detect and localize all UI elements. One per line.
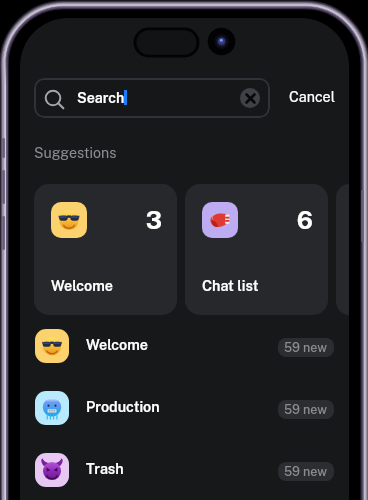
button[interactable]: Clear search (240, 88, 260, 108)
staticText: Cancel (289, 88, 336, 105)
staticText: Production (86, 398, 160, 415)
staticText: Trash (86, 460, 124, 477)
staticText: Chat list (202, 277, 259, 294)
button[interactable]: 6 (185, 184, 328, 315)
staticText: 59 new (284, 464, 328, 479)
staticText: Welcome (51, 277, 114, 294)
staticText: Suggestions (34, 145, 117, 162)
button[interactable]: 2 (336, 184, 349, 315)
staticText: 6 (296, 206, 313, 235)
staticText: Search (77, 90, 125, 107)
staticText: 59 new (284, 340, 328, 355)
staticText: 59 new (284, 402, 328, 417)
button[interactable]: Trash (20, 439, 349, 500)
button[interactable]: Cancel (283, 76, 341, 116)
staticText: Welcome (86, 336, 149, 353)
button[interactable]: Search (34, 78, 270, 118)
button[interactable]: Production (20, 377, 349, 439)
button[interactable]: Welcome (20, 315, 349, 377)
button[interactable]: 3 (34, 184, 177, 315)
staticText: 3 (145, 206, 162, 235)
